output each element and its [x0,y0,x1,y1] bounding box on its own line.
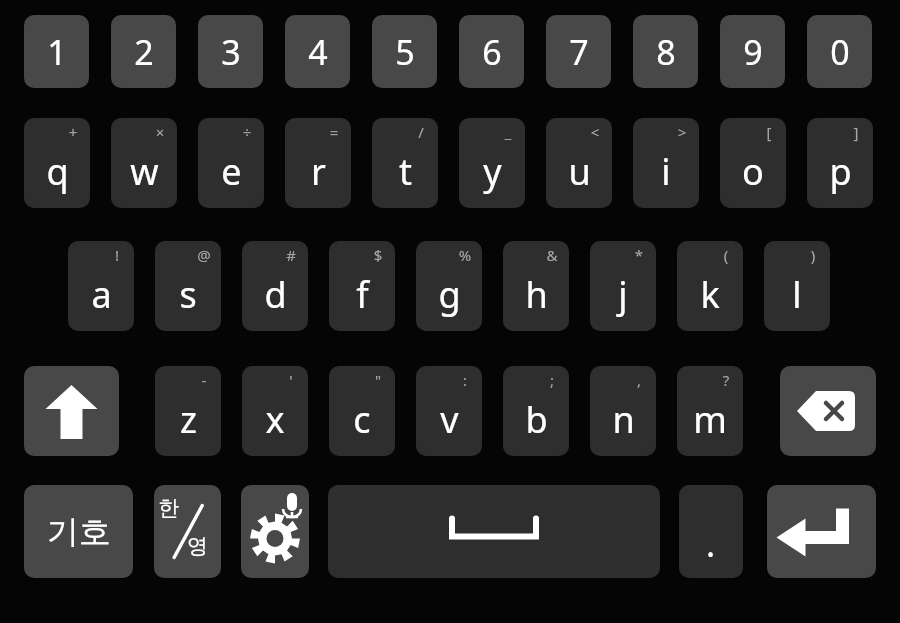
button[interactable]: - [155,366,221,456]
staticText: v [440,395,459,444]
staticText: d [264,270,287,319]
staticText: " [369,370,387,392]
button[interactable]: / [372,118,438,208]
staticText: ] [847,122,865,144]
button[interactable]: ! [68,241,134,331]
button[interactable]: ( [677,241,743,331]
button[interactable]: Korean English toggle [154,485,221,578]
button[interactable]: & [503,241,569,331]
staticText: 영 [187,533,208,559]
staticText: ! [108,245,126,267]
staticText: c [353,395,371,444]
button[interactable]: Backspace [780,366,876,456]
staticText: - [195,370,213,392]
button[interactable]: $ [329,241,395,331]
button[interactable]: ; [503,366,569,456]
staticText: 한 [158,495,179,521]
button[interactable]: ? [677,366,743,456]
staticText: n [612,395,635,444]
staticText: = [325,122,343,144]
staticText: 0 [830,29,850,75]
staticText: 4 [308,29,328,75]
button[interactable]: , [590,366,656,456]
staticText: w [130,147,159,196]
staticText: 5 [395,29,415,75]
staticText: ; [543,370,561,392]
staticText: ' [282,370,300,392]
staticText: h [525,270,548,319]
button[interactable]: 7 [546,15,611,88]
button[interactable]: 1 [24,15,89,88]
staticText: / [412,122,430,144]
staticText: f [356,270,369,319]
staticText: $ [369,245,387,267]
button[interactable]: 5 [372,15,437,88]
button[interactable]: " [329,366,395,456]
button[interactable]: 6 [459,15,524,88]
button[interactable]: * [590,241,656,331]
staticText: ÷ [238,122,256,144]
staticText: j [618,270,628,319]
button[interactable]: 9 [720,15,785,88]
button[interactable]: % [416,241,482,331]
staticText: % [456,245,474,267]
staticText: p [829,147,852,196]
staticText: z [180,395,197,444]
staticText: > [673,122,691,144]
button[interactable]: ÷ [198,118,264,208]
staticText: a [91,270,112,319]
button[interactable]: . [679,485,743,578]
staticText: l [792,270,802,319]
staticText: _ [499,122,517,144]
button[interactable]: = [285,118,351,208]
staticText: k [700,270,720,319]
staticText: 기호 [47,512,111,552]
button[interactable]: 기호 [24,485,133,578]
button[interactable]: ' [242,366,308,456]
staticText: # [282,245,300,267]
button[interactable]: 0 [807,15,872,88]
button[interactable]: < [546,118,612,208]
button[interactable]: @ [155,241,221,331]
staticText: b [525,395,548,444]
staticText: < [586,122,604,144]
button[interactable]: : [416,366,482,456]
button[interactable]: 3 [198,15,263,88]
button[interactable]: 2 [111,15,176,88]
staticText: 6 [482,29,502,75]
button[interactable]: Enter [767,485,876,578]
button[interactable]: # [242,241,308,331]
staticText: u [568,147,591,196]
staticText: : [456,370,474,392]
button[interactable]: 8 [633,15,698,88]
staticText: m [693,395,727,444]
button[interactable]: 4 [285,15,350,88]
staticText: x [265,395,285,444]
staticText: 3 [221,29,241,75]
button[interactable]: ] [807,118,873,208]
button[interactable]: Shift [24,366,119,456]
staticText: 7 [569,29,589,75]
staticText: & [543,245,561,267]
button[interactable]: + [24,118,90,208]
staticText: . [706,521,716,567]
button[interactable]: Space [328,485,660,578]
staticText: 1 [47,29,67,75]
button[interactable]: ) [764,241,830,331]
staticText: × [151,122,169,144]
staticText: @ [195,245,213,267]
button[interactable]: _ [459,118,525,208]
button[interactable]: × [111,118,177,208]
staticText: [ [760,122,778,144]
staticText: ( [717,245,735,267]
staticText: i [661,147,671,196]
button[interactable]: > [633,118,699,208]
staticText: , [630,370,648,392]
button[interactable]: Settings [241,485,309,578]
button[interactable]: [ [720,118,786,208]
staticText: q [46,147,69,196]
staticText: + [64,122,82,144]
staticText: ? [717,370,735,392]
staticText: * [630,245,648,267]
staticText: 2 [134,29,154,75]
